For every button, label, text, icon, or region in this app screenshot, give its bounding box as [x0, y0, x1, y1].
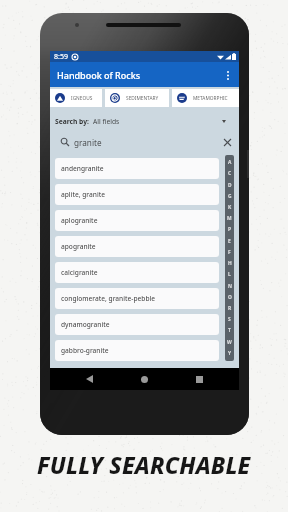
button[interactable]: granite: [61, 135, 231, 150]
staticText: aplogranite: [61, 216, 98, 225]
staticText: IGNEOUS: [71, 95, 93, 102]
staticText: T: [228, 327, 231, 334]
staticText: Y: [228, 350, 232, 357]
staticText: H: [228, 260, 232, 267]
button[interactable]: IGNEOUS: [50, 89, 102, 107]
button[interactable]: Back: [78, 368, 100, 390]
staticText: granite: [74, 137, 102, 148]
staticText: METAMORPHIC: [193, 95, 228, 102]
button[interactable]: andengranite: [55, 158, 219, 179]
staticText: M: [227, 215, 232, 222]
staticText: G: [228, 193, 232, 200]
staticText: conglomerate, granite-pebble: [61, 294, 156, 303]
button[interactable]: Recent apps: [188, 368, 210, 390]
staticText: Search by:: [55, 117, 89, 126]
staticText: SEDIMENTARY: [126, 95, 159, 102]
staticText: L: [228, 271, 231, 278]
button[interactable]: METAMORPHIC: [172, 89, 239, 107]
staticText: FULLY SEARCHABLE: [37, 449, 251, 480]
staticText: apogranite: [61, 242, 96, 251]
button[interactable]: aplite, granite: [55, 184, 219, 205]
button[interactable]: calcigranite: [55, 262, 219, 283]
staticText: F: [228, 249, 231, 256]
staticText: dynamogranite: [61, 320, 110, 329]
staticText: C: [228, 170, 232, 177]
button[interactable]: aplogranite: [55, 210, 219, 231]
button[interactable]: Alphabet index: [225, 155, 234, 361]
staticText: S: [228, 316, 231, 323]
button[interactable]: gabbro-granite: [55, 340, 219, 361]
staticText: O: [228, 294, 232, 301]
button[interactable]: dynamogranite: [55, 314, 219, 335]
staticText: D: [228, 182, 232, 189]
staticText: A: [228, 159, 232, 166]
staticText: gabbro-granite: [61, 346, 109, 355]
staticText: N: [228, 283, 232, 290]
button[interactable]: conglomerate, granite-pebble: [55, 288, 219, 309]
staticText: andengranite: [61, 164, 104, 173]
staticText: All fields: [93, 117, 120, 126]
staticText: E: [228, 238, 231, 245]
button[interactable]: Home: [133, 368, 155, 390]
staticText: K: [228, 204, 232, 211]
staticText: Handbook of Rocks: [57, 69, 141, 81]
staticText: 8:59: [54, 52, 68, 62]
staticText: aplite, granite: [61, 190, 105, 199]
button[interactable]: More options: [220, 67, 236, 83]
staticText: R: [228, 305, 232, 312]
button[interactable]: SEDIMENTARY: [105, 89, 169, 107]
staticText: calcigranite: [61, 268, 98, 277]
staticText: W: [227, 339, 232, 346]
button[interactable]: apogranite: [55, 236, 219, 257]
staticText: P: [228, 226, 232, 233]
